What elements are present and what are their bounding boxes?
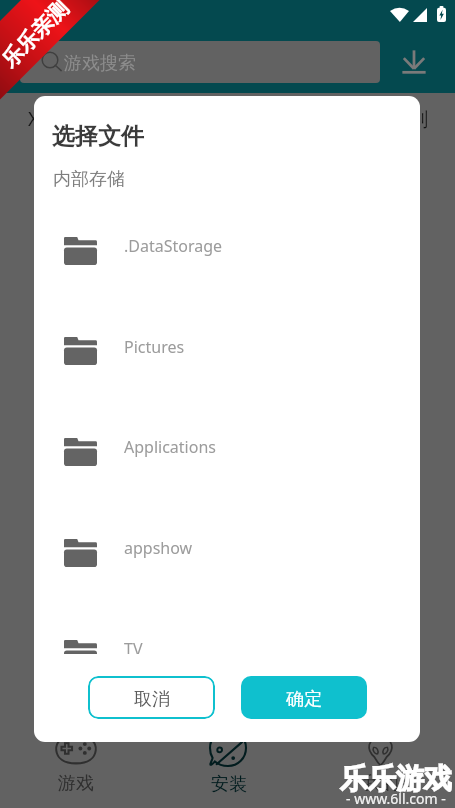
button[interactable] [34, 190, 420, 244]
button[interactable]: Downloads [402, 50, 426, 74]
staticText: X [28, 106, 40, 132]
staticText: Pictures [124, 336, 185, 358]
staticText: .DataStorage [124, 235, 223, 257]
button[interactable]: 取消 [88, 676, 215, 719]
staticText: appshow [124, 537, 193, 559]
button[interactable] [152, 742, 304, 808]
staticText: 确定 [286, 688, 322, 711]
staticText: 安装 [211, 773, 247, 796]
staticText: 游戏搜索 [64, 52, 136, 75]
button[interactable]: 游戏搜索 [20, 41, 380, 83]
staticText: 乐乐亲测 [0, 0, 74, 73]
staticText: - www.6ll.com - [346, 789, 446, 808]
button[interactable] [304, 742, 455, 808]
staticText: 刚 [409, 108, 428, 132]
button[interactable] [34, 345, 420, 446]
button[interactable] [34, 445, 420, 546]
staticText: 乐乐游戏 [340, 761, 452, 796]
staticText: 选择文件 [52, 122, 144, 151]
staticText: 取消 [134, 688, 170, 711]
staticText: 游戏 [58, 772, 94, 795]
button[interactable] [34, 244, 420, 345]
staticText: 我的 [363, 772, 399, 795]
staticText: Applications [124, 436, 216, 458]
button[interactable]: 确定 [241, 676, 367, 719]
button[interactable] [34, 546, 420, 647]
staticText: TV [124, 638, 143, 654]
button[interactable] [0, 742, 152, 808]
staticText: 内部存储 [53, 168, 125, 191]
